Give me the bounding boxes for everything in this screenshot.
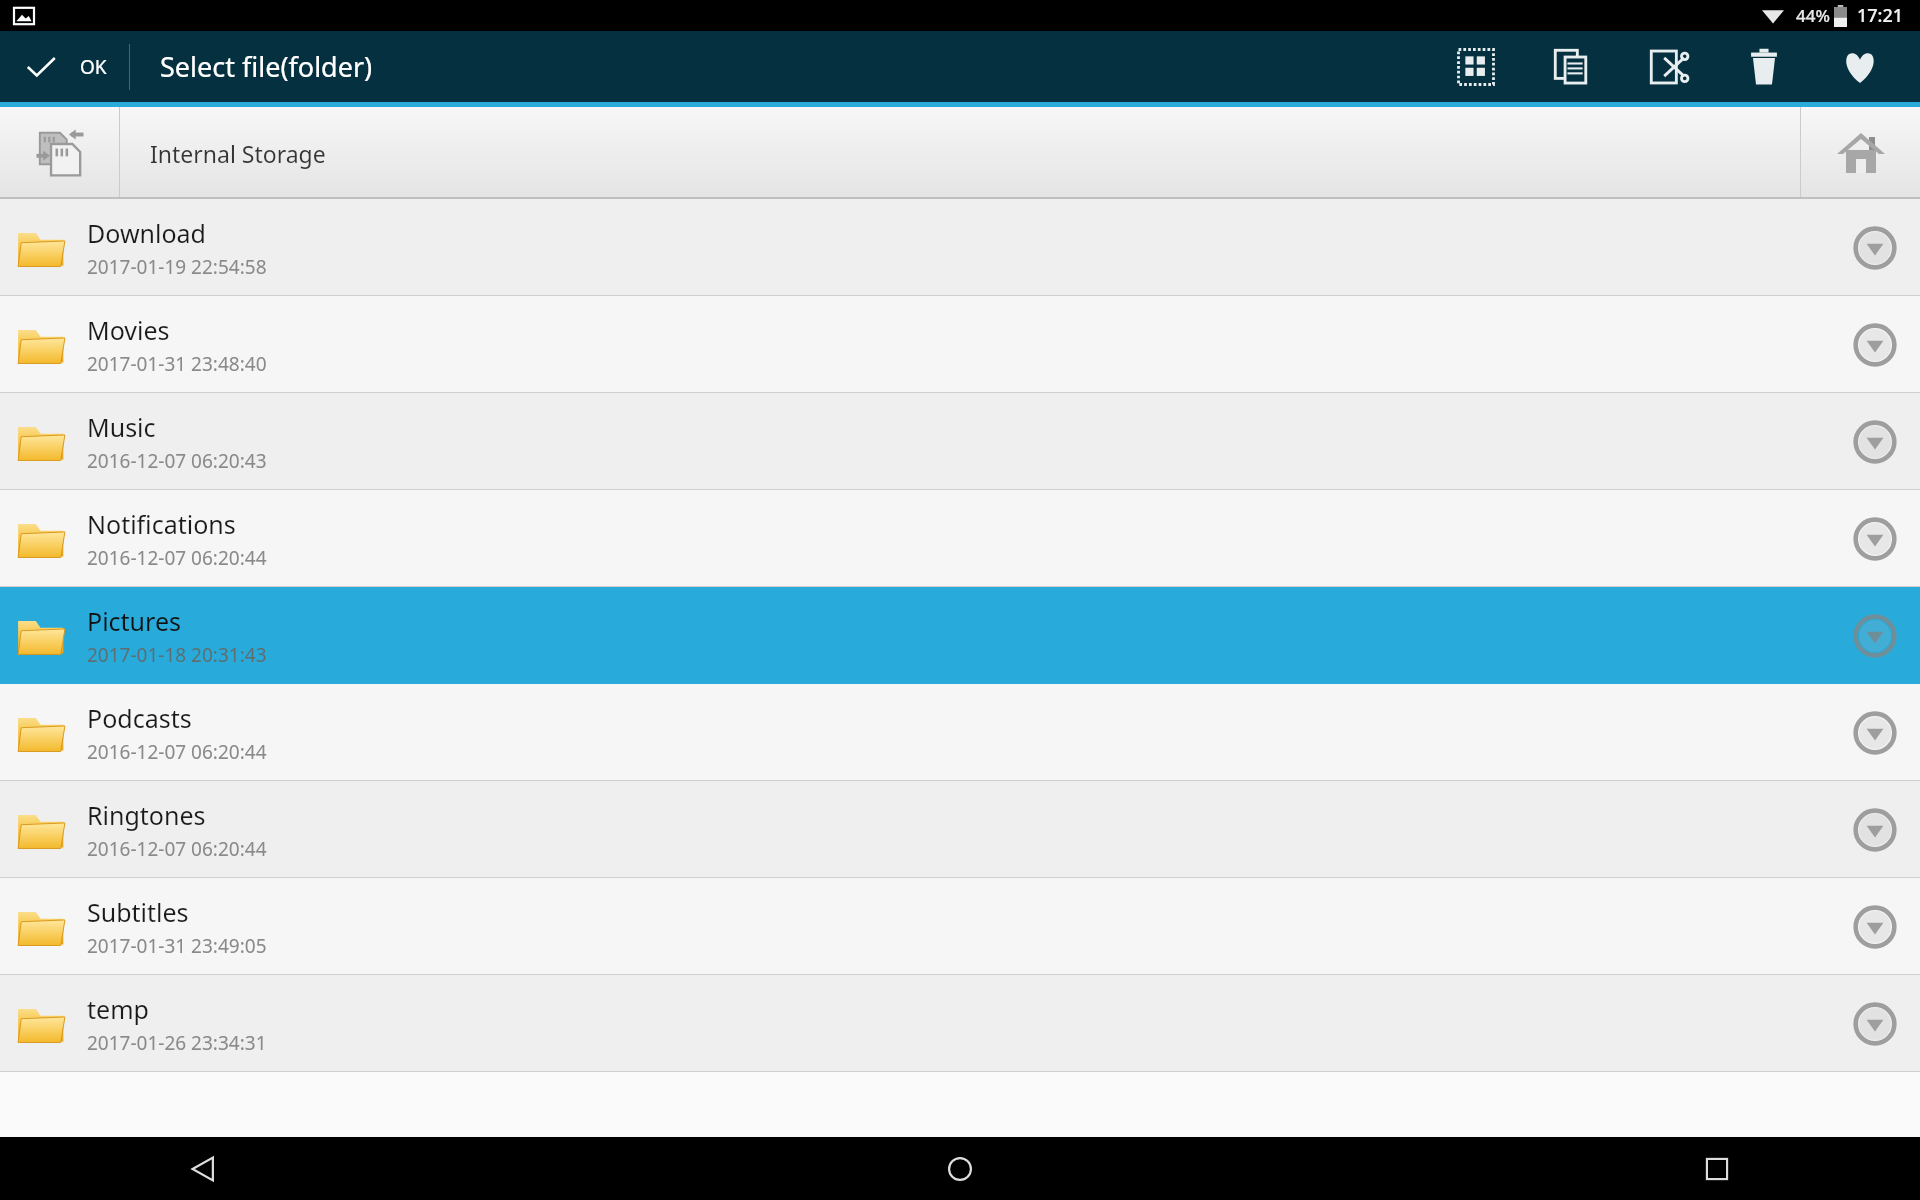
button[interactable]: Cut <box>1620 31 1716 102</box>
button[interactable]: Podcasts <box>0 684 1920 781</box>
button[interactable]: More options for Ringtones <box>1830 781 1920 878</box>
button[interactable]: Delete <box>1716 31 1812 102</box>
button[interactable]: Favorite <box>1812 31 1908 102</box>
button[interactable]: OK <box>0 31 129 102</box>
button[interactable]: Download <box>0 199 1920 296</box>
staticText: Music <box>87 410 156 444</box>
staticText: 2017-01-26 23:34:31 <box>87 1030 267 1056</box>
staticText: 2016-12-07 06:20:44 <box>87 739 267 765</box>
staticText: 17:21 <box>1857 3 1904 28</box>
button[interactable]: Internal Storage <box>150 107 1800 199</box>
button[interactable]: More options for Music <box>1830 393 1920 490</box>
button[interactable]: Home <box>1801 107 1920 199</box>
staticText: 2016-12-07 06:20:43 <box>87 448 267 474</box>
button[interactable]: Copy <box>1524 31 1620 102</box>
staticText: temp <box>87 992 149 1026</box>
staticText: 2017-01-18 20:31:43 <box>87 642 267 668</box>
staticText: Internal Storage <box>150 138 326 169</box>
button[interactable]: Movies <box>0 296 1920 393</box>
button[interactable]: More options for Notifications <box>1830 490 1920 587</box>
staticText: Download <box>87 216 206 250</box>
staticText: Subtitles <box>87 895 189 929</box>
button[interactable]: Subtitles <box>0 878 1920 975</box>
button[interactable]: Recents <box>1674 1137 1760 1200</box>
button[interactable]: More options for temp <box>1830 975 1920 1072</box>
staticText: 2016-12-07 06:20:44 <box>87 545 267 571</box>
button[interactable]: temp <box>0 975 1920 1072</box>
staticText: Select file(folder) <box>160 48 373 85</box>
button[interactable]: Pictures <box>0 587 1920 684</box>
button[interactable]: Ringtones <box>0 781 1920 878</box>
staticText: 44% <box>1796 4 1830 27</box>
staticText: 2017-01-31 23:49:05 <box>87 933 267 959</box>
staticText: 2017-01-19 22:54:58 <box>87 254 267 280</box>
staticText: 2016-12-07 06:20:44 <box>87 836 267 862</box>
staticText: 2017-01-31 23:48:40 <box>87 351 267 377</box>
button[interactable]: More options for Subtitles <box>1830 878 1920 975</box>
button[interactable]: Select all <box>1428 31 1524 102</box>
button[interactable]: More options for Download <box>1830 199 1920 296</box>
button[interactable]: More options for Movies <box>1830 296 1920 393</box>
staticText: Pictures <box>87 604 181 638</box>
button[interactable]: More options for Podcasts <box>1830 684 1920 781</box>
button[interactable]: Music <box>0 393 1920 490</box>
button[interactable]: Notifications <box>0 490 1920 587</box>
staticText: Ringtones <box>87 798 206 832</box>
staticText: Podcasts <box>87 701 192 735</box>
button[interactable]: Home <box>917 1137 1003 1200</box>
button[interactable]: Back <box>160 1137 246 1200</box>
button[interactable]: More options for Pictures <box>1830 587 1920 684</box>
button[interactable]: Switch storage <box>0 107 119 199</box>
staticText: Movies <box>87 313 170 347</box>
staticText: OK <box>80 54 107 80</box>
staticText: Notifications <box>87 507 236 541</box>
